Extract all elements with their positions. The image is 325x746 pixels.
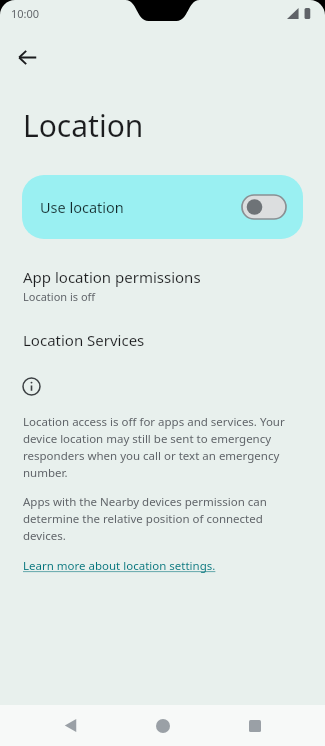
staticText: 10:00 xyxy=(11,6,40,21)
staticText: Location xyxy=(23,105,144,146)
button[interactable]: App location permissions xyxy=(0,266,325,305)
staticText: Learn more about location settings. xyxy=(23,558,216,574)
staticText: App location permissions xyxy=(23,267,201,287)
button[interactable]: Back xyxy=(9,39,45,75)
button[interactable]: Location Services xyxy=(0,328,325,352)
button[interactable]: Back xyxy=(47,705,93,746)
staticText: Use location xyxy=(40,197,124,217)
staticText: Location access is off for apps and serv… xyxy=(23,414,301,481)
button[interactable]: Use location xyxy=(22,175,303,239)
button[interactable]: Learn more about location settings. xyxy=(0,557,240,575)
button[interactable]: Home xyxy=(140,705,186,746)
staticText: Location is off xyxy=(23,289,96,304)
staticText: Apps with the Nearby devices permission … xyxy=(23,494,301,544)
button[interactable]: Recent apps xyxy=(232,705,278,746)
